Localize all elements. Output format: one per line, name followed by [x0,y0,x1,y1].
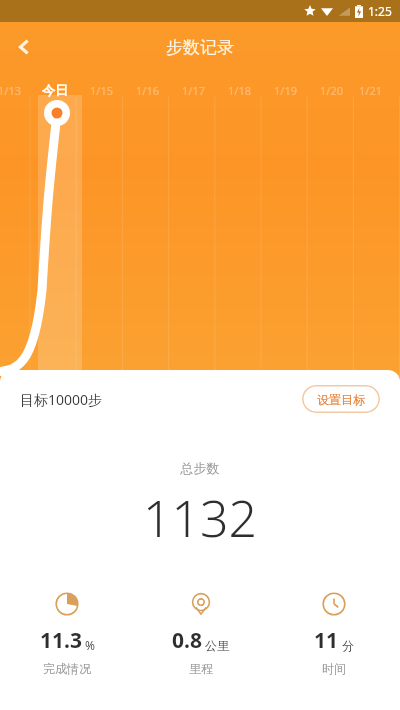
staticText: 总步数 [0,460,400,476]
button[interactable]: 1/20 [308,80,354,100]
staticText: 1/18 [228,83,251,98]
button[interactable]: 11.3 [0,592,134,676]
staticText: 步数记录 [166,37,234,58]
button[interactable]: 今日 [32,80,78,100]
staticText: 设置目标 [317,392,365,407]
staticText: 分 [342,638,354,653]
staticText: 1/13 [0,83,21,98]
staticText: 里程 [189,661,213,676]
button[interactable]: Back [0,23,48,71]
staticText: 1/20 [320,83,343,98]
staticText: 1132 [0,484,400,552]
button[interactable]: 1/17 [170,80,216,100]
button[interactable]: 1/18 [216,80,262,100]
button[interactable]: 1/19 [262,80,308,100]
button[interactable]: 11 [267,592,400,676]
staticText: 11 [314,626,339,655]
button[interactable]: 0.8 [134,592,267,676]
button[interactable]: 1/15 [78,80,124,100]
staticText: 目标10000步 [20,390,103,409]
staticText: 1/19 [274,83,297,98]
staticText: 1/16 [136,83,159,98]
staticText: 今日 [42,82,68,98]
staticText: 完成情况 [43,661,91,676]
button[interactable]: 1/21 [354,80,386,100]
staticText: 公里 [205,638,229,653]
button[interactable]: 设置目标 [302,385,380,413]
staticText: 11.3 [40,626,82,655]
button[interactable]: 1/13 [0,80,32,100]
staticText: 0.8 [172,626,202,655]
staticText: 时间 [322,661,346,676]
button[interactable]: 1/16 [124,80,170,100]
staticText: 1/17 [182,83,205,98]
staticText: 1/15 [90,83,113,98]
staticText: 1:25 [368,3,392,19]
staticText: % [85,637,95,653]
staticText: 1/21 [359,83,382,98]
